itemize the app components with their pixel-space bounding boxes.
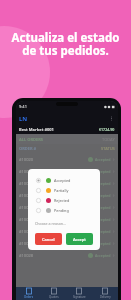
- staticText: #10025: [19, 217, 34, 222]
- staticText: LN: [19, 115, 28, 123]
- staticText: Accepted: [95, 193, 111, 198]
- button[interactable]: Quotes: [41, 287, 66, 300]
- staticText: Best Market #001: [19, 127, 54, 132]
- staticText: #10022: [19, 181, 34, 186]
- button[interactable]: Pending: [35, 205, 93, 215]
- staticText: Signature: [73, 295, 86, 299]
- staticText: Accepted: [95, 181, 111, 186]
- staticText: ›: [113, 156, 115, 163]
- button[interactable]: Menu: [108, 115, 115, 122]
- staticText: Partially: [54, 188, 69, 193]
- staticText: Cancel: [42, 237, 55, 242]
- staticText: Accepted: [95, 205, 111, 210]
- button[interactable]: Partially: [35, 185, 93, 195]
- button[interactable]: #10023: [19, 189, 115, 201]
- staticText: Quotes: [49, 295, 59, 299]
- button[interactable]: #10021: [19, 165, 115, 177]
- staticText: #10028: [19, 253, 34, 258]
- button[interactable]: #10027: [19, 237, 115, 249]
- staticText: Choose a reason...: [35, 221, 66, 226]
- staticText: Accepted: [54, 178, 71, 183]
- staticText: ›: [113, 204, 115, 211]
- staticText: #10024: [19, 205, 34, 210]
- staticText: Pending: [54, 208, 69, 213]
- staticText: #10021: [19, 169, 34, 174]
- staticText: ORDER #: [19, 146, 37, 151]
- staticText: Delivery: [100, 295, 111, 299]
- staticText: Accepted: [95, 253, 111, 258]
- staticText: ALL ORDERS: [19, 137, 44, 142]
- staticText: ›: [113, 216, 115, 223]
- button[interactable]: Rejected: [35, 195, 93, 205]
- button[interactable]: #10020: [19, 153, 115, 165]
- button[interactable]: Accepted: [35, 175, 93, 185]
- staticText: ›: [113, 228, 115, 235]
- staticText: ›: [113, 180, 115, 187]
- staticText: Rejected: [54, 198, 70, 203]
- button[interactable]: Orders: [16, 287, 41, 300]
- button[interactable]: Cancel: [35, 233, 62, 245]
- button[interactable]: Delivery: [92, 287, 118, 300]
- button[interactable]: #10024: [19, 201, 115, 213]
- staticText: Accepted: [95, 229, 111, 234]
- staticText: Accepted: [95, 169, 111, 174]
- staticText: ›: [113, 168, 115, 175]
- staticText: #10020: [19, 157, 34, 162]
- staticText: ›: [113, 192, 115, 199]
- staticText: TODAY: [102, 137, 115, 142]
- staticText: STATUS: [101, 146, 115, 151]
- staticText: Actualiza el estado de tus pedidos.: [4, 30, 127, 58]
- staticText: Orders: [24, 295, 34, 299]
- button[interactable]: #10022: [19, 177, 115, 189]
- staticText: #10023: [19, 193, 34, 198]
- button[interactable]: #10026: [19, 225, 115, 237]
- staticText: Accepted: [95, 217, 111, 222]
- button[interactable]: Home: [19, 115, 28, 123]
- staticText: ›: [113, 240, 115, 247]
- staticText: #10026: [19, 229, 34, 234]
- button[interactable]: #10025: [19, 213, 115, 225]
- button[interactable]: #10028: [19, 249, 115, 261]
- staticText: #10027: [19, 241, 34, 246]
- staticText: Accepted: [95, 241, 111, 246]
- staticText: 9:41: [19, 104, 27, 109]
- staticText: €1724.90: [99, 127, 115, 132]
- staticText: Accept: [73, 237, 86, 242]
- button[interactable]: Signature: [66, 287, 92, 300]
- button[interactable]: Accept: [66, 233, 93, 245]
- staticText: Accepted: [95, 157, 111, 162]
- staticText: ›: [113, 252, 115, 259]
